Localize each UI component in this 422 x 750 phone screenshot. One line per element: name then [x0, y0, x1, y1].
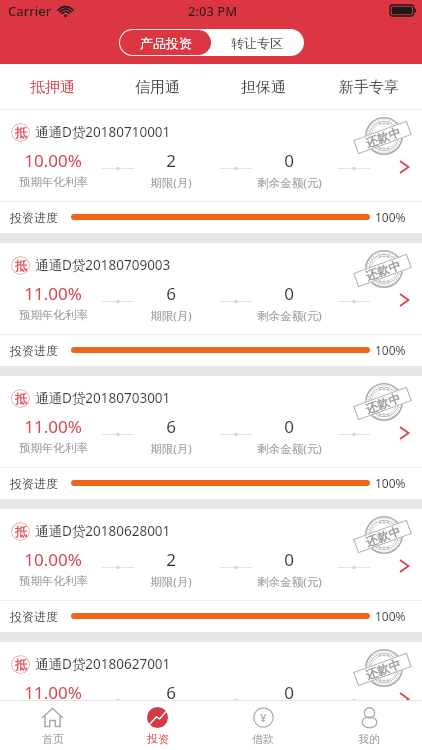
staticText: 期限(月)	[150, 441, 192, 457]
button[interactable]: 信用通	[105, 64, 210, 110]
staticText: 剩余金额(元)	[257, 574, 322, 590]
staticText: 还款中	[363, 523, 402, 549]
staticText: 转让专区	[231, 35, 283, 51]
staticText: 6	[166, 282, 176, 305]
button[interactable]: 担保通	[210, 64, 316, 110]
staticText: 100%	[375, 608, 406, 624]
staticText: 首页	[42, 732, 64, 746]
staticText: 期限(月)	[150, 175, 192, 191]
staticText: 6	[166, 415, 176, 438]
button[interactable]: 转让专区	[211, 30, 303, 55]
staticText: 投资进度	[10, 476, 58, 491]
staticText: 期限(月)	[150, 574, 192, 590]
staticText: 新手专享	[339, 78, 399, 97]
button[interactable]: Loan	[210, 700, 316, 750]
staticText: 抵	[15, 258, 27, 273]
staticText: 通通D贷20180628001	[35, 522, 171, 540]
staticText: 2:03 PM	[188, 2, 238, 20]
staticText: 信用通	[135, 78, 180, 97]
staticText: 抵押通	[30, 78, 75, 97]
button[interactable]: 还款中	[0, 509, 422, 632]
staticText: 担保通	[241, 78, 286, 97]
button[interactable]: 还款中	[0, 376, 422, 499]
staticText: 2	[166, 548, 176, 571]
staticText: 预期年化利率	[19, 308, 88, 322]
staticText: 6	[166, 681, 176, 700]
button[interactable]: 还款中	[0, 110, 422, 233]
staticText: 11.00%	[24, 415, 82, 438]
staticText: ¥	[260, 710, 267, 725]
staticText: 0	[284, 415, 294, 438]
staticText: 0	[284, 282, 294, 305]
staticText: 11.00%	[24, 282, 82, 305]
staticText: 预期年化利率	[19, 441, 88, 455]
staticText: 100%	[375, 475, 406, 491]
staticText: 借款	[252, 732, 274, 746]
staticText: Carrier	[8, 2, 52, 20]
button[interactable]: Profile	[316, 700, 422, 750]
staticText: 100%	[375, 342, 406, 358]
staticText: 0	[284, 681, 294, 700]
staticText: 0	[284, 149, 294, 172]
staticText: 11.00%	[24, 681, 82, 700]
staticText: 还款中	[363, 656, 402, 682]
staticText: 通通D贷20180710001	[35, 123, 171, 141]
staticText: 抵	[15, 125, 27, 140]
button[interactable]: 产品投资	[120, 30, 211, 55]
staticText: 通通D贷20180627001	[35, 655, 171, 673]
staticText: 还款中	[363, 124, 402, 150]
staticText: 2	[166, 149, 176, 172]
button[interactable]: 抵押通	[0, 64, 105, 110]
staticText: 通通D贷20180703001	[35, 389, 171, 407]
staticText: 剩余金额(元)	[257, 308, 322, 324]
staticText: 产品投资	[140, 35, 192, 51]
staticText: 投资进度	[10, 210, 58, 225]
staticText: 抵	[15, 657, 27, 672]
staticText: 期限(月)	[150, 308, 192, 324]
button[interactable]: 新手专享	[316, 64, 422, 110]
button[interactable]: Invest	[105, 700, 210, 750]
staticText: 10.00%	[24, 548, 82, 571]
staticText: 100%	[375, 209, 406, 225]
staticText: 预期年化利率	[19, 175, 88, 189]
staticText: 还款中	[363, 390, 402, 416]
button[interactable]: 还款中	[0, 642, 422, 700]
staticText: 我的	[358, 732, 380, 746]
staticText: 剩余金额(元)	[257, 175, 322, 191]
staticText: 抵	[15, 391, 27, 406]
staticText: 投资	[147, 732, 169, 746]
staticText: 10.00%	[24, 149, 82, 172]
staticText: 预期年化利率	[19, 574, 88, 588]
staticText: 还款中	[363, 257, 402, 283]
staticText: 通通D贷20180709003	[35, 256, 171, 274]
staticText: 抵	[15, 524, 27, 539]
staticText: 投资进度	[10, 609, 58, 624]
button[interactable]: Home	[0, 700, 105, 750]
staticText: 0	[284, 548, 294, 571]
button[interactable]: 还款中	[0, 243, 422, 366]
staticText: 剩余金额(元)	[257, 441, 322, 457]
staticText: 投资进度	[10, 343, 58, 358]
